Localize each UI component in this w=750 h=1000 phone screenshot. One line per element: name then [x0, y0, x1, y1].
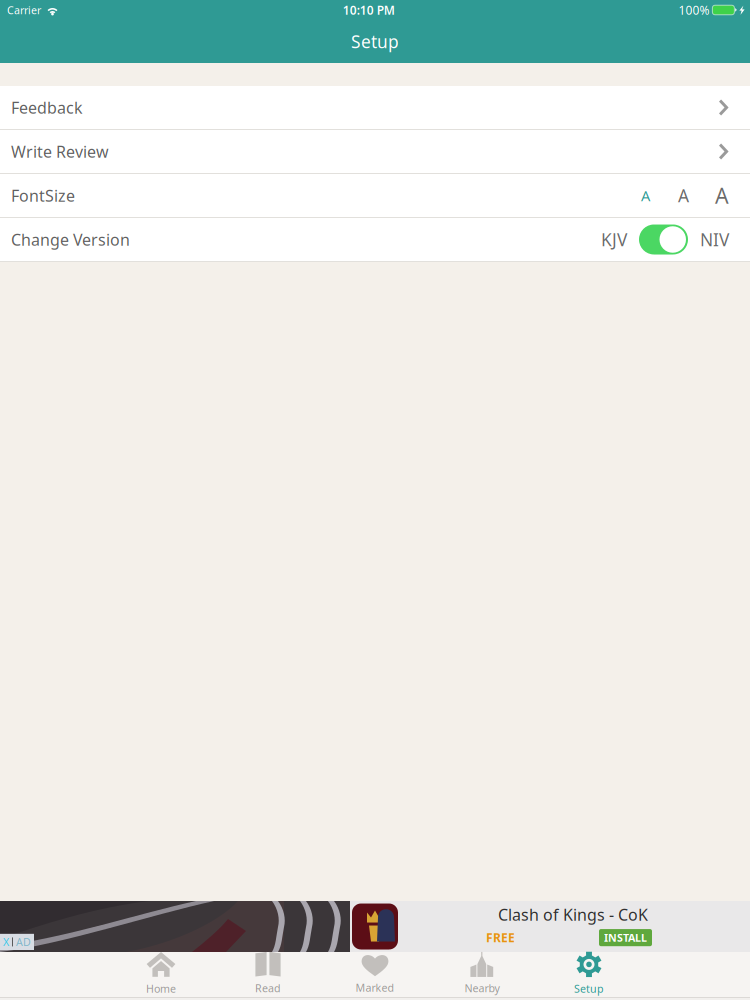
button[interactable]: Advertisement: Clash of Kings [0, 901, 750, 952]
button[interactable]: Home [107, 952, 214, 997]
staticText: A [641, 186, 650, 205]
staticText: Carrier [7, 3, 41, 17]
button[interactable]: FontSize [0, 174, 750, 217]
button[interactable]: Marked [321, 952, 428, 997]
staticText: Feedback [11, 97, 83, 118]
staticText: X [3, 935, 9, 949]
staticText: Setup [574, 981, 604, 996]
staticText: 100% [678, 2, 709, 18]
button[interactable]: Write Review [0, 130, 750, 173]
staticText: Write Review [11, 141, 109, 162]
staticText: Setup [351, 30, 399, 53]
staticText: A [715, 181, 729, 210]
staticText: AD [16, 935, 31, 949]
button[interactable]: Change Version [0, 218, 750, 261]
staticText: KJV [601, 228, 627, 251]
staticText: A [678, 184, 689, 207]
staticText: NIV [700, 228, 729, 251]
button[interactable]: Feedback [0, 86, 750, 129]
staticText: Nearby [464, 981, 499, 995]
button[interactable]: Read [214, 952, 321, 997]
staticText: FREE [486, 930, 515, 946]
staticText: FontSize [11, 185, 75, 206]
staticText: Change Version [11, 229, 130, 250]
staticText: Read [255, 981, 281, 995]
staticText: Home [146, 981, 176, 996]
staticText: Marked [355, 980, 394, 995]
staticText: 10:10 PM [343, 2, 395, 18]
button[interactable]: Nearby [428, 952, 535, 997]
button[interactable]: Setup [535, 952, 642, 997]
staticText: Clash of Kings - CoK [498, 904, 648, 925]
staticText: INSTALL [604, 930, 647, 945]
